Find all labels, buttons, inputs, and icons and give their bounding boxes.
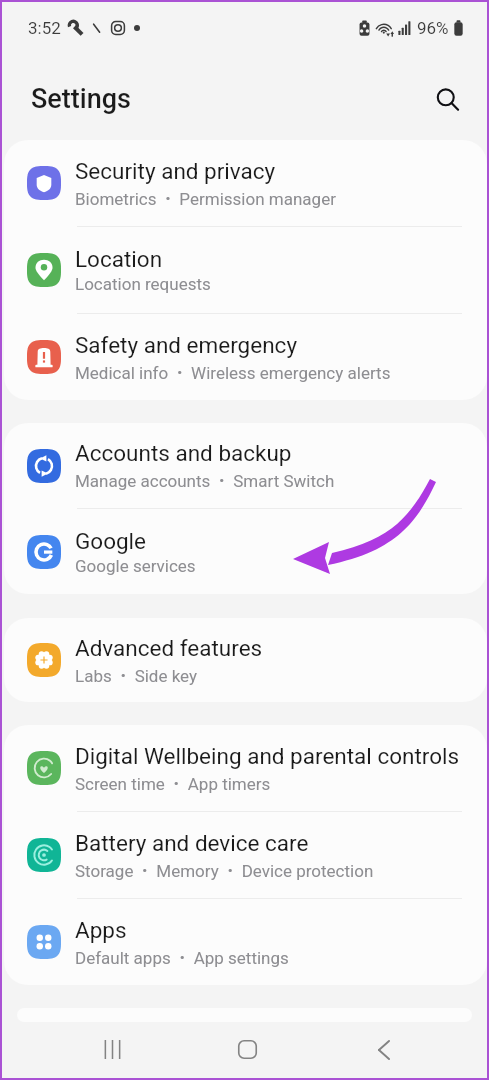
staticText: Medical info · Wireless emergency alerts [75,360,391,383]
staticText: Settings [31,83,131,115]
button[interactable]: Digital Wellbeing and parental controls [4,725,487,811]
button[interactable]: Battery and device care [4,812,487,898]
button[interactable]: Safety and emergency [4,314,487,400]
button[interactable]: Google [4,509,487,594]
staticText: Storage · Memory · Device protection [75,858,374,881]
staticText: Safety and emergency [75,332,298,358]
staticText: Location [75,246,163,272]
staticText: Default apps · App settings [75,945,289,968]
staticText: Apps [75,917,127,943]
staticText: Location requests [75,274,211,294]
staticText: Battery and device care [75,830,309,856]
button[interactable]: Back [359,1025,408,1074]
button[interactable]: Security and privacy [4,140,487,226]
staticText: Digital Wellbeing and parental controls [75,743,460,769]
staticText: Security and privacy [75,158,276,184]
staticText: Labs · Side key [75,663,198,686]
staticText: Screen time · App timers [75,771,271,794]
staticText: Biometrics · Permission manager [75,186,336,209]
staticText: 96% [417,18,449,38]
button[interactable]: Advanced features [4,618,487,702]
button[interactable]: Recent apps [88,1025,137,1074]
staticText: 3:52 [28,18,61,38]
button[interactable]: Search [425,77,471,123]
button[interactable]: Accounts and backup [4,423,487,508]
staticText: Advanced features [75,635,263,661]
staticText: Google services [75,556,196,576]
button[interactable]: Apps [4,899,487,985]
button[interactable]: Location [4,227,487,313]
staticText: Manage accounts · Smart Switch [75,468,335,491]
staticText: Accounts and backup [75,440,292,466]
button[interactable]: Home [223,1025,272,1074]
staticText: Google [75,528,147,554]
